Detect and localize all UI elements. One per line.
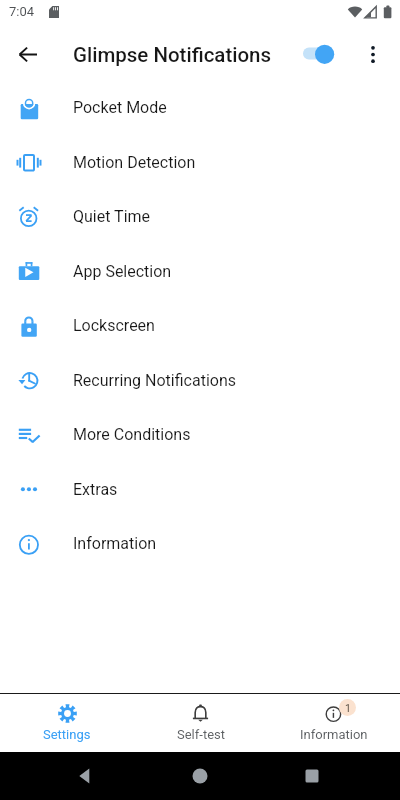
staticText: 7:04 [9, 4, 35, 19]
staticText: More Conditions [73, 425, 191, 444]
button[interactable]: More Conditions [0, 407, 400, 462]
staticText: App Selection [73, 262, 172, 281]
staticText: Information [300, 727, 368, 742]
staticText: Extras [73, 480, 118, 499]
button[interactable]: Pocket Mode [0, 80, 400, 135]
staticText: Glimpse Notifications [73, 43, 272, 67]
button[interactable]: Extras [0, 462, 400, 516]
button[interactable]: App Selection [0, 244, 400, 298]
button[interactable]: Quiet Time [0, 189, 400, 244]
button[interactable]: Toggle Glimpse Notifications [296, 28, 340, 76]
staticText: Settings [43, 727, 91, 742]
button[interactable]: Motion Detection [0, 135, 400, 189]
button[interactable]: Settings [0, 694, 134, 752]
staticText: Pocket Mode [73, 98, 167, 117]
staticText: 1 [345, 702, 351, 714]
staticText: Information [73, 534, 157, 553]
button[interactable]: Back [4, 30, 52, 78]
button[interactable]: More options [351, 32, 395, 76]
staticText: Lockscreen [73, 316, 155, 335]
staticText: Quiet Time [73, 207, 151, 226]
staticText: Recurring Notifications [73, 371, 237, 390]
button[interactable]: Lockscreen [0, 298, 400, 353]
button[interactable]: Information [0, 516, 400, 571]
staticText: Motion Detection [73, 153, 196, 172]
staticText: Self-test [177, 727, 225, 742]
button[interactable]: 1 [267, 694, 400, 752]
button[interactable]: Self-test [134, 694, 267, 752]
button[interactable]: Recurring Notifications [0, 353, 400, 407]
